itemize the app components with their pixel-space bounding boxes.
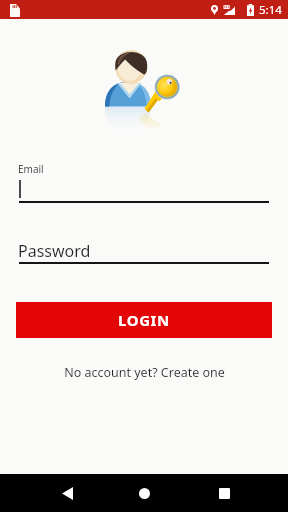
staticText: No account yet? Create one [64, 364, 225, 381]
button[interactable]: No account yet? Create one [58, 361, 231, 384]
staticText: 5:14 [259, 2, 282, 18]
staticText: Email [18, 162, 44, 176]
button[interactable]: Back [43, 474, 91, 512]
staticText: LOGIN [118, 310, 170, 330]
button[interactable]: Home [120, 474, 168, 512]
button[interactable]: Recent apps [200, 474, 248, 512]
button[interactable]: LOGIN [16, 302, 272, 338]
staticText: Password [18, 240, 91, 262]
